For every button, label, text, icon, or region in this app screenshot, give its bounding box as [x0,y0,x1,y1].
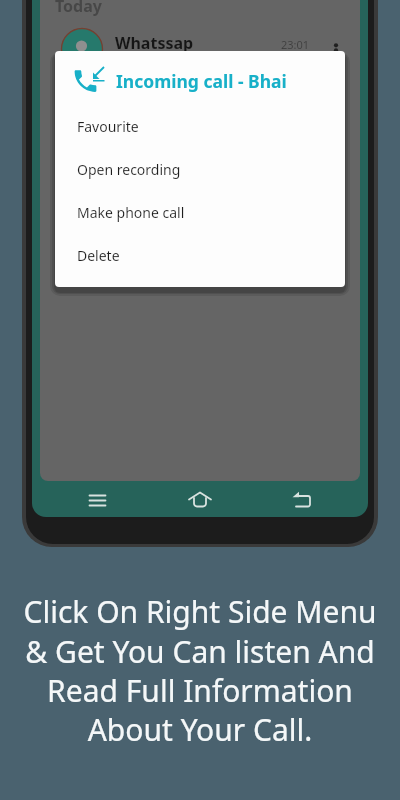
button[interactable]: Make phone call [55,196,345,238]
staticText: Open recording [77,160,181,179]
button[interactable] [282,485,322,517]
button[interactable]: Open recording [55,153,345,195]
staticText: Click On Right Side Menu & Get You Can l… [0,591,400,750]
staticText: Whatssap [115,32,194,54]
button[interactable] [78,485,118,517]
staticText: Incoming call - Bhai [116,69,287,93]
staticText: Make phone call [77,203,185,222]
button[interactable] [326,32,346,51]
staticText: Today [55,0,102,17]
button[interactable]: Favourite [55,110,345,152]
staticText: Favourite [77,117,139,136]
button[interactable]: Whatssap [105,25,315,51]
button[interactable]: Delete [55,239,345,281]
staticText: Delete [77,246,120,265]
button[interactable] [180,485,220,517]
staticText: 23:01 [281,37,310,52]
